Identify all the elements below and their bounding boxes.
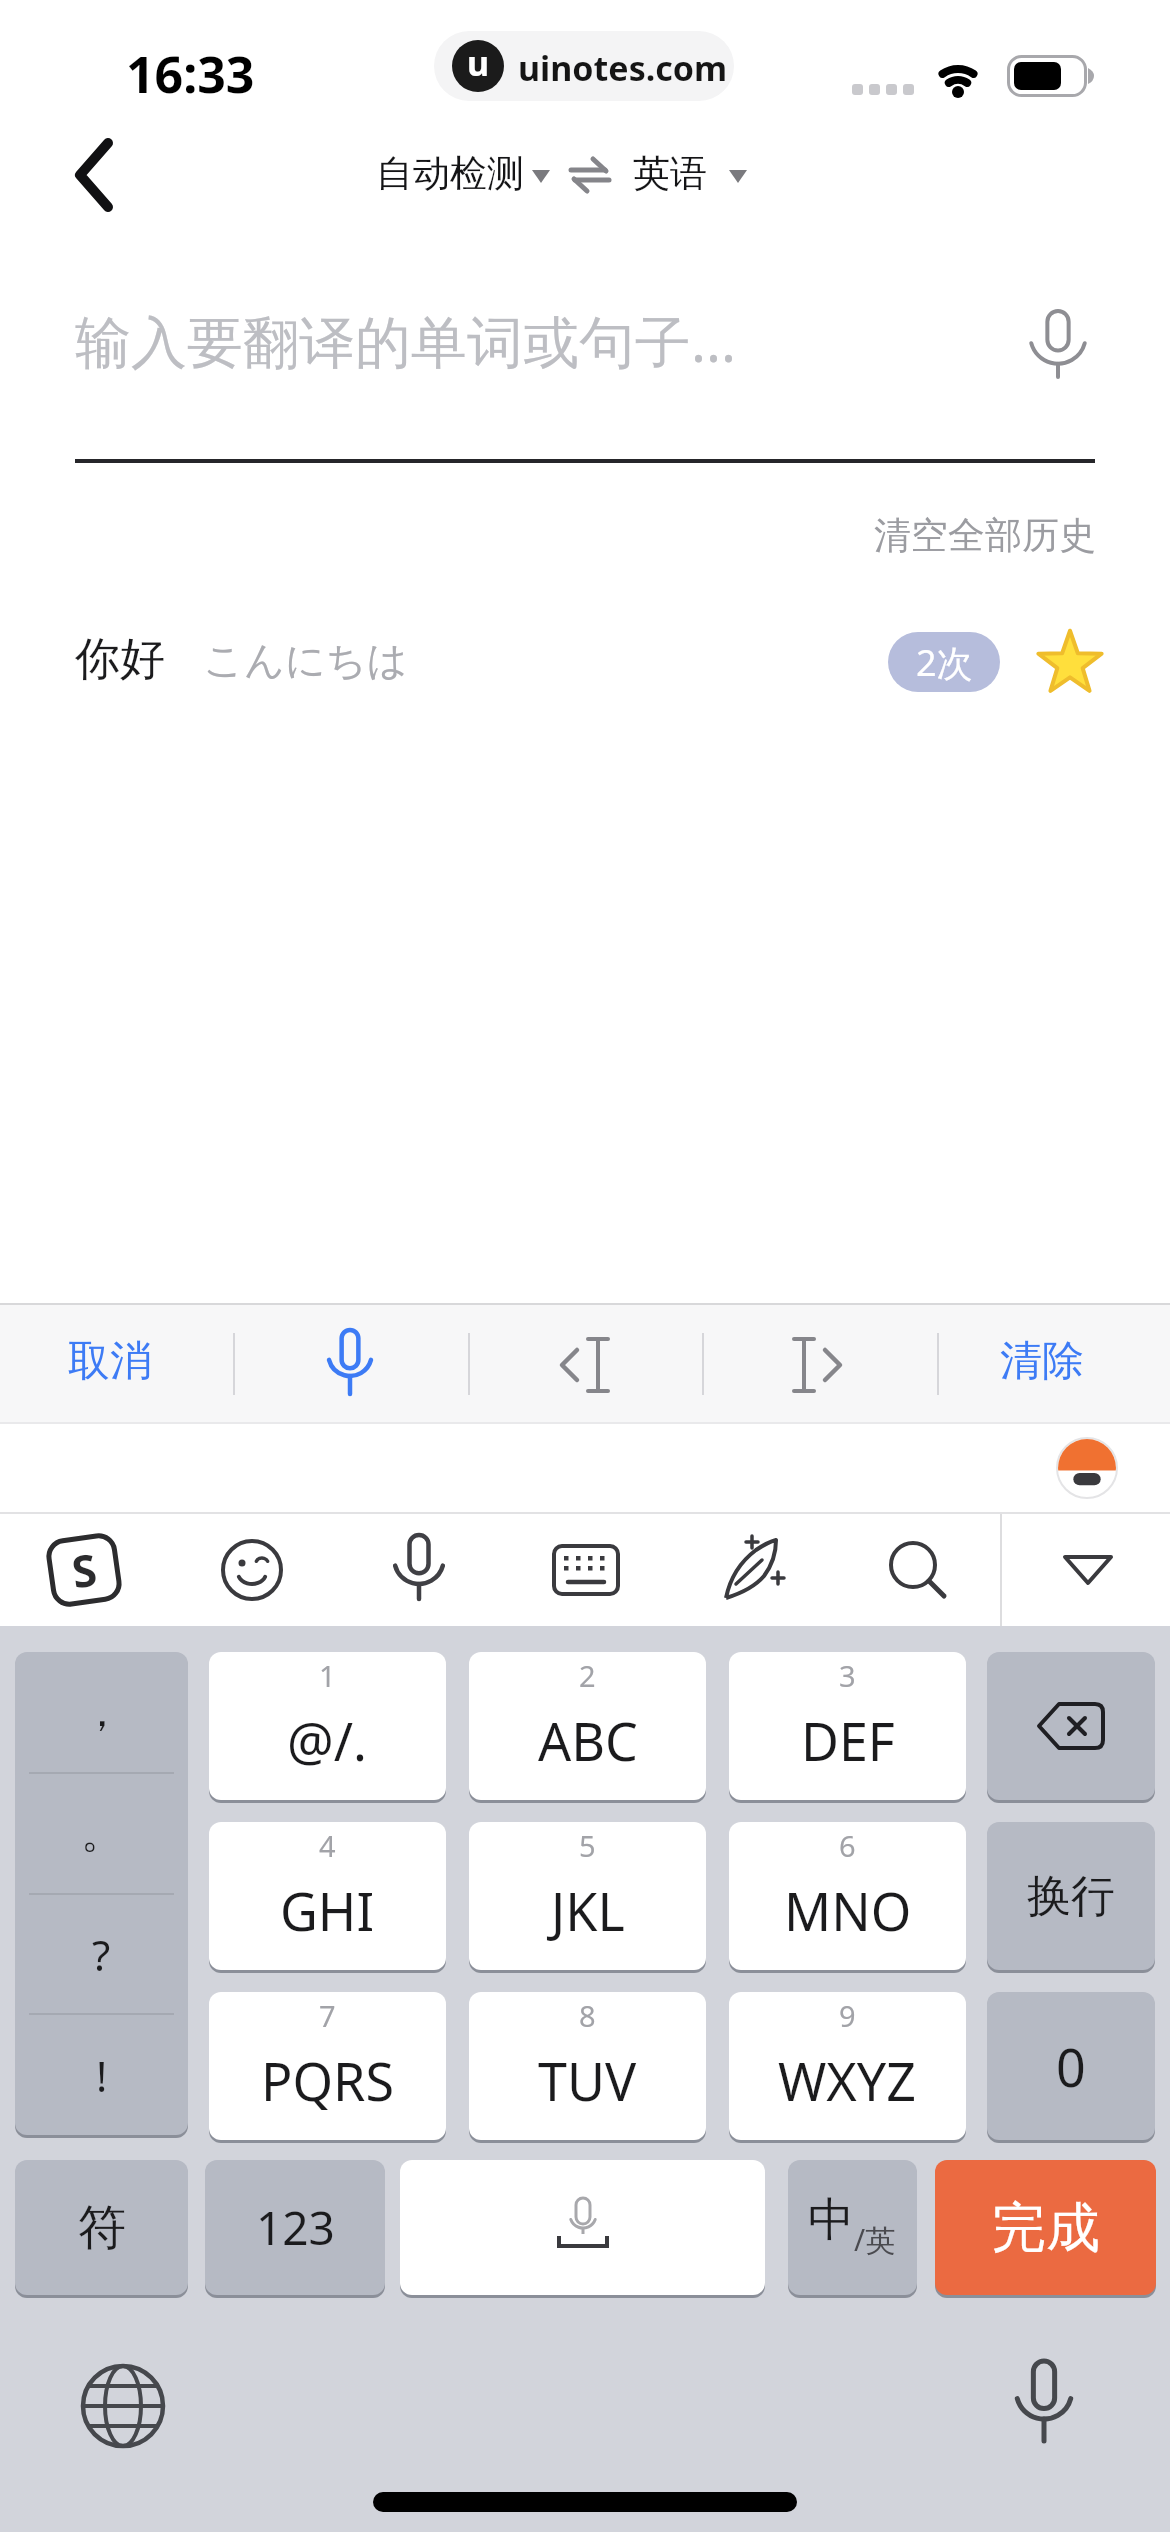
- button[interactable]: 。: [15, 1773, 188, 1894]
- staticText: 4: [319, 1826, 336, 1865]
- button[interactable]: 换行: [987, 1822, 1155, 1970]
- button[interactable]: 完成: [935, 2160, 1156, 2295]
- staticText: WXYZ: [778, 2045, 917, 2116]
- staticText: 你好: [75, 631, 165, 688]
- button[interactable]: !: [15, 2015, 188, 2136]
- staticText: S: [68, 1538, 101, 1601]
- button[interactable]: 7: [209, 1992, 446, 2140]
- staticText: 2: [579, 1656, 596, 1695]
- button[interactable]: [548, 1337, 620, 1393]
- staticText: /英: [854, 2219, 896, 2260]
- button[interactable]: [220, 1538, 284, 1602]
- staticText: PQRS: [261, 2045, 394, 2116]
- staticText: 完成: [992, 2194, 1100, 2262]
- button[interactable]: 1: [209, 1652, 446, 1800]
- button[interactable]: 2: [469, 1652, 706, 1800]
- button[interactable]: [400, 2160, 765, 2295]
- staticText: MNO: [784, 1875, 912, 1946]
- staticText: 0: [1056, 2031, 1086, 2102]
- button[interactable]: [390, 1532, 448, 1608]
- button[interactable]: 清空全部历史: [874, 512, 1096, 559]
- button[interactable]: [1038, 630, 1102, 694]
- staticText: 英语: [633, 150, 707, 197]
- button[interactable]: 自动检测: [360, 140, 560, 210]
- button[interactable]: 9: [729, 1992, 966, 2140]
- button[interactable]: 123: [205, 2160, 385, 2295]
- button[interactable]: [782, 1337, 854, 1393]
- button[interactable]: 符: [15, 2160, 188, 2295]
- staticText: 5: [579, 1826, 596, 1865]
- staticText: u: [467, 40, 490, 86]
- button[interactable]: 取消: [68, 1335, 208, 1395]
- button[interactable]: [79, 2362, 167, 2450]
- staticText: ?: [92, 1926, 111, 1983]
- staticText: 取消: [68, 1335, 152, 1388]
- button[interactable]: ，: [15, 1652, 188, 1773]
- staticText: 自动检测: [376, 150, 524, 197]
- staticText: TUV: [538, 2045, 637, 2116]
- button[interactable]: S: [40, 1529, 128, 1611]
- button[interactable]: [1062, 1554, 1114, 1586]
- button[interactable]: 6: [729, 1822, 966, 1970]
- button[interactable]: [552, 1544, 620, 1596]
- button[interactable]: 英语: [620, 140, 760, 210]
- staticText: 符: [78, 2198, 126, 2258]
- staticText: 123: [256, 2196, 335, 2259]
- staticText: !: [96, 2047, 108, 2104]
- button[interactable]: ?: [15, 1894, 188, 2015]
- button[interactable]: [1008, 2360, 1080, 2446]
- button[interactable]: 8: [469, 1992, 706, 2140]
- staticText: こんにちは: [203, 635, 408, 685]
- button[interactable]: 中: [788, 2160, 917, 2295]
- button[interactable]: 清除: [1000, 1335, 1140, 1395]
- staticText: 清除: [1000, 1335, 1084, 1388]
- staticText: ABC: [538, 1705, 638, 1776]
- button[interactable]: [1056, 1437, 1118, 1499]
- staticText: 7: [319, 1996, 336, 2035]
- staticText: JKL: [551, 1875, 625, 1946]
- staticText: GHI: [280, 1875, 375, 1946]
- staticText: 换行: [1027, 1869, 1115, 1924]
- staticText: 6: [839, 1826, 856, 1865]
- button[interactable]: 你好: [60, 615, 1110, 711]
- button[interactable]: 4: [209, 1822, 446, 1970]
- staticText: 8: [579, 1996, 596, 2035]
- staticText: 。: [81, 1807, 123, 1860]
- staticText: 1: [319, 1656, 336, 1695]
- staticText: 9: [839, 1996, 856, 2035]
- staticText: @/.: [287, 1705, 368, 1776]
- staticText: 输入要翻译的单词或句子...: [75, 302, 737, 378]
- button[interactable]: 5: [469, 1822, 706, 1970]
- button[interactable]: 3: [729, 1652, 966, 1800]
- button[interactable]: [987, 1652, 1155, 1800]
- staticText: 16:33: [126, 40, 255, 108]
- staticText: ，: [81, 1686, 123, 1739]
- button[interactable]: 0: [987, 1992, 1155, 2140]
- staticText: 2次: [916, 638, 973, 687]
- staticText: 清空全部历史: [874, 512, 1096, 559]
- button[interactable]: [570, 158, 610, 192]
- staticText: DEF: [801, 1705, 895, 1776]
- staticText: uinotes.com: [518, 45, 728, 91]
- button[interactable]: [886, 1538, 950, 1602]
- button[interactable]: [712, 1532, 788, 1608]
- staticText: 中: [808, 2191, 854, 2249]
- button[interactable]: u: [434, 31, 734, 101]
- button[interactable]: [56, 135, 146, 215]
- staticText: 3: [839, 1656, 856, 1695]
- button[interactable]: [15, 1652, 188, 2135]
- button[interactable]: [320, 1327, 380, 1403]
